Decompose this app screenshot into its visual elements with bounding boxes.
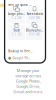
staticText: 240 MB xyxy=(29,16,40,20)
staticText: Trash xyxy=(13,29,20,32)
staticText: Blurry photos xyxy=(26,29,43,32)
staticText: 2.1 GB xyxy=(11,33,21,36)
staticText: Screenshots xyxy=(26,12,42,16)
staticText: 890 MB xyxy=(29,33,40,36)
staticText: 1.2 GB xyxy=(11,16,21,20)
button[interactable]: Google Photos xyxy=(8,56,41,60)
button[interactable]: Screenshots xyxy=(26,9,43,24)
staticText: Large photos xyxy=(8,12,25,16)
staticText: Google Photos xyxy=(13,56,32,60)
staticText: Manage your storage across Google Photos… xyxy=(13,68,43,94)
button[interactable]: Trash xyxy=(8,25,25,40)
button[interactable]: Large photos xyxy=(8,9,25,24)
staticText: Back up to free up space xyxy=(8,49,32,53)
staticText: Free up space on your phone xyxy=(8,3,32,7)
button[interactable]: Blurry photos xyxy=(26,25,43,40)
